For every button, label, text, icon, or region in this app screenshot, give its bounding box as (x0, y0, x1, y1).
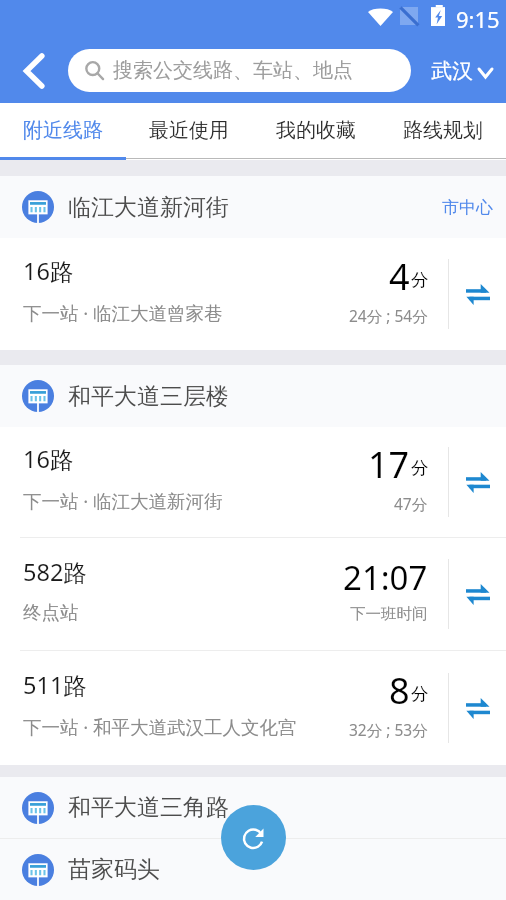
button[interactable]: Refresh (221, 805, 286, 870)
button[interactable]: Reverse direction (449, 238, 506, 350)
button[interactable]: 苗家码头 (0, 839, 506, 900)
staticText: 24分 ; 54分 (349, 305, 428, 326)
staticText: 4 (389, 252, 410, 301)
button[interactable]: 搜索公交线路、车站、地点 (68, 49, 411, 92)
button[interactable]: 511路 (0, 651, 506, 765)
staticText: 47分 (394, 493, 428, 514)
staticText: 分 (411, 269, 429, 291)
staticText: 附近线路 (23, 118, 103, 143)
button[interactable]: 我的收藏 (252, 103, 379, 157)
staticText: 511路 (23, 669, 87, 701)
button[interactable]: 武汉 (431, 38, 492, 103)
staticText: 临江大道新河街 (68, 193, 229, 222)
staticText: 17 (368, 440, 410, 489)
staticText: 和平大道三层楼 (68, 382, 229, 411)
button[interactable]: Reverse direction (449, 427, 506, 537)
staticText: 下一站 · 临江大道曾家巷 (23, 300, 223, 325)
staticText: 下一站 · 和平大道武汉工人文化宫 (23, 714, 297, 739)
staticText: 9:15 (456, 4, 500, 34)
staticText: 582路 (23, 556, 87, 588)
button[interactable]: 和平大道三层楼 (0, 365, 506, 427)
staticText: 武汉 (431, 58, 473, 84)
button[interactable]: 和平大道三角路 (0, 777, 506, 838)
staticText: 苗家码头 (68, 855, 160, 884)
button[interactable]: 16路 (0, 427, 506, 537)
staticText: 终点站 (23, 601, 79, 624)
staticText: 16路 (23, 443, 74, 475)
staticText: 最近使用 (149, 118, 229, 143)
staticText: 32分 ; 53分 (349, 719, 428, 740)
staticText: 下一班时间 (350, 604, 428, 624)
button[interactable]: 临江大道新河街 (0, 176, 506, 238)
button[interactable]: Reverse direction (449, 651, 506, 765)
staticText: 分 (411, 457, 429, 479)
button[interactable]: 附近线路 (0, 103, 126, 157)
button[interactable]: Back (0, 38, 68, 103)
staticText: 搜索公交线路、车站、地点 (113, 58, 353, 83)
staticText: 路线规划 (403, 118, 483, 143)
staticText: 市中心 (442, 197, 493, 218)
button[interactable]: Reverse direction (449, 538, 506, 650)
staticText: 我的收藏 (276, 118, 356, 143)
button[interactable]: 路线规划 (379, 103, 506, 157)
staticText: 分 (411, 683, 429, 705)
staticText: 21:07 (343, 555, 428, 600)
button[interactable]: 582路 (0, 538, 506, 650)
staticText: 16路 (23, 255, 74, 287)
button[interactable]: 最近使用 (126, 103, 252, 157)
button[interactable]: 16路 (0, 238, 506, 350)
staticText: 和平大道三角路 (68, 793, 229, 822)
staticText: 下一站 · 临江大道新河街 (23, 488, 223, 513)
staticText: 8 (389, 666, 410, 715)
